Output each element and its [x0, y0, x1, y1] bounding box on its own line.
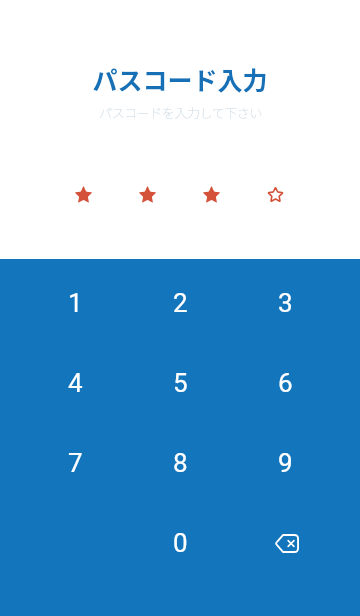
- button[interactable]: 0: [128, 503, 233, 583]
- staticText: パスコードを入力して下さい: [99, 103, 262, 122]
- button[interactable]: 9: [233, 423, 338, 503]
- button[interactable]: 1: [22, 263, 128, 343]
- button[interactable]: 8: [128, 423, 233, 503]
- staticText: 1: [68, 288, 83, 318]
- staticText: 2: [173, 288, 188, 318]
- button[interactable]: 4: [22, 343, 128, 423]
- button[interactable]: Digit 1: [74, 185, 138, 204]
- staticText: 9: [278, 448, 293, 478]
- button[interactable]: 3: [233, 263, 338, 343]
- staticText: 0: [173, 528, 188, 558]
- button[interactable]: Digit 4: [266, 185, 330, 204]
- button[interactable]: 7: [22, 423, 128, 503]
- button[interactable]: Digit 3: [202, 185, 266, 204]
- button[interactable]: 2: [128, 263, 233, 343]
- staticText: 6: [278, 368, 293, 398]
- staticText: 4: [68, 368, 83, 398]
- staticText: パスコード入力: [92, 61, 268, 97]
- staticText: 8: [173, 448, 188, 478]
- staticText: 3: [278, 288, 293, 318]
- button[interactable]: 6: [233, 343, 338, 423]
- staticText: 7: [68, 448, 83, 478]
- staticText: 5: [173, 368, 188, 398]
- button[interactable]: 5: [128, 343, 233, 423]
- button[interactable]: Delete: [233, 503, 338, 583]
- button[interactable]: Digit 2: [138, 185, 202, 204]
